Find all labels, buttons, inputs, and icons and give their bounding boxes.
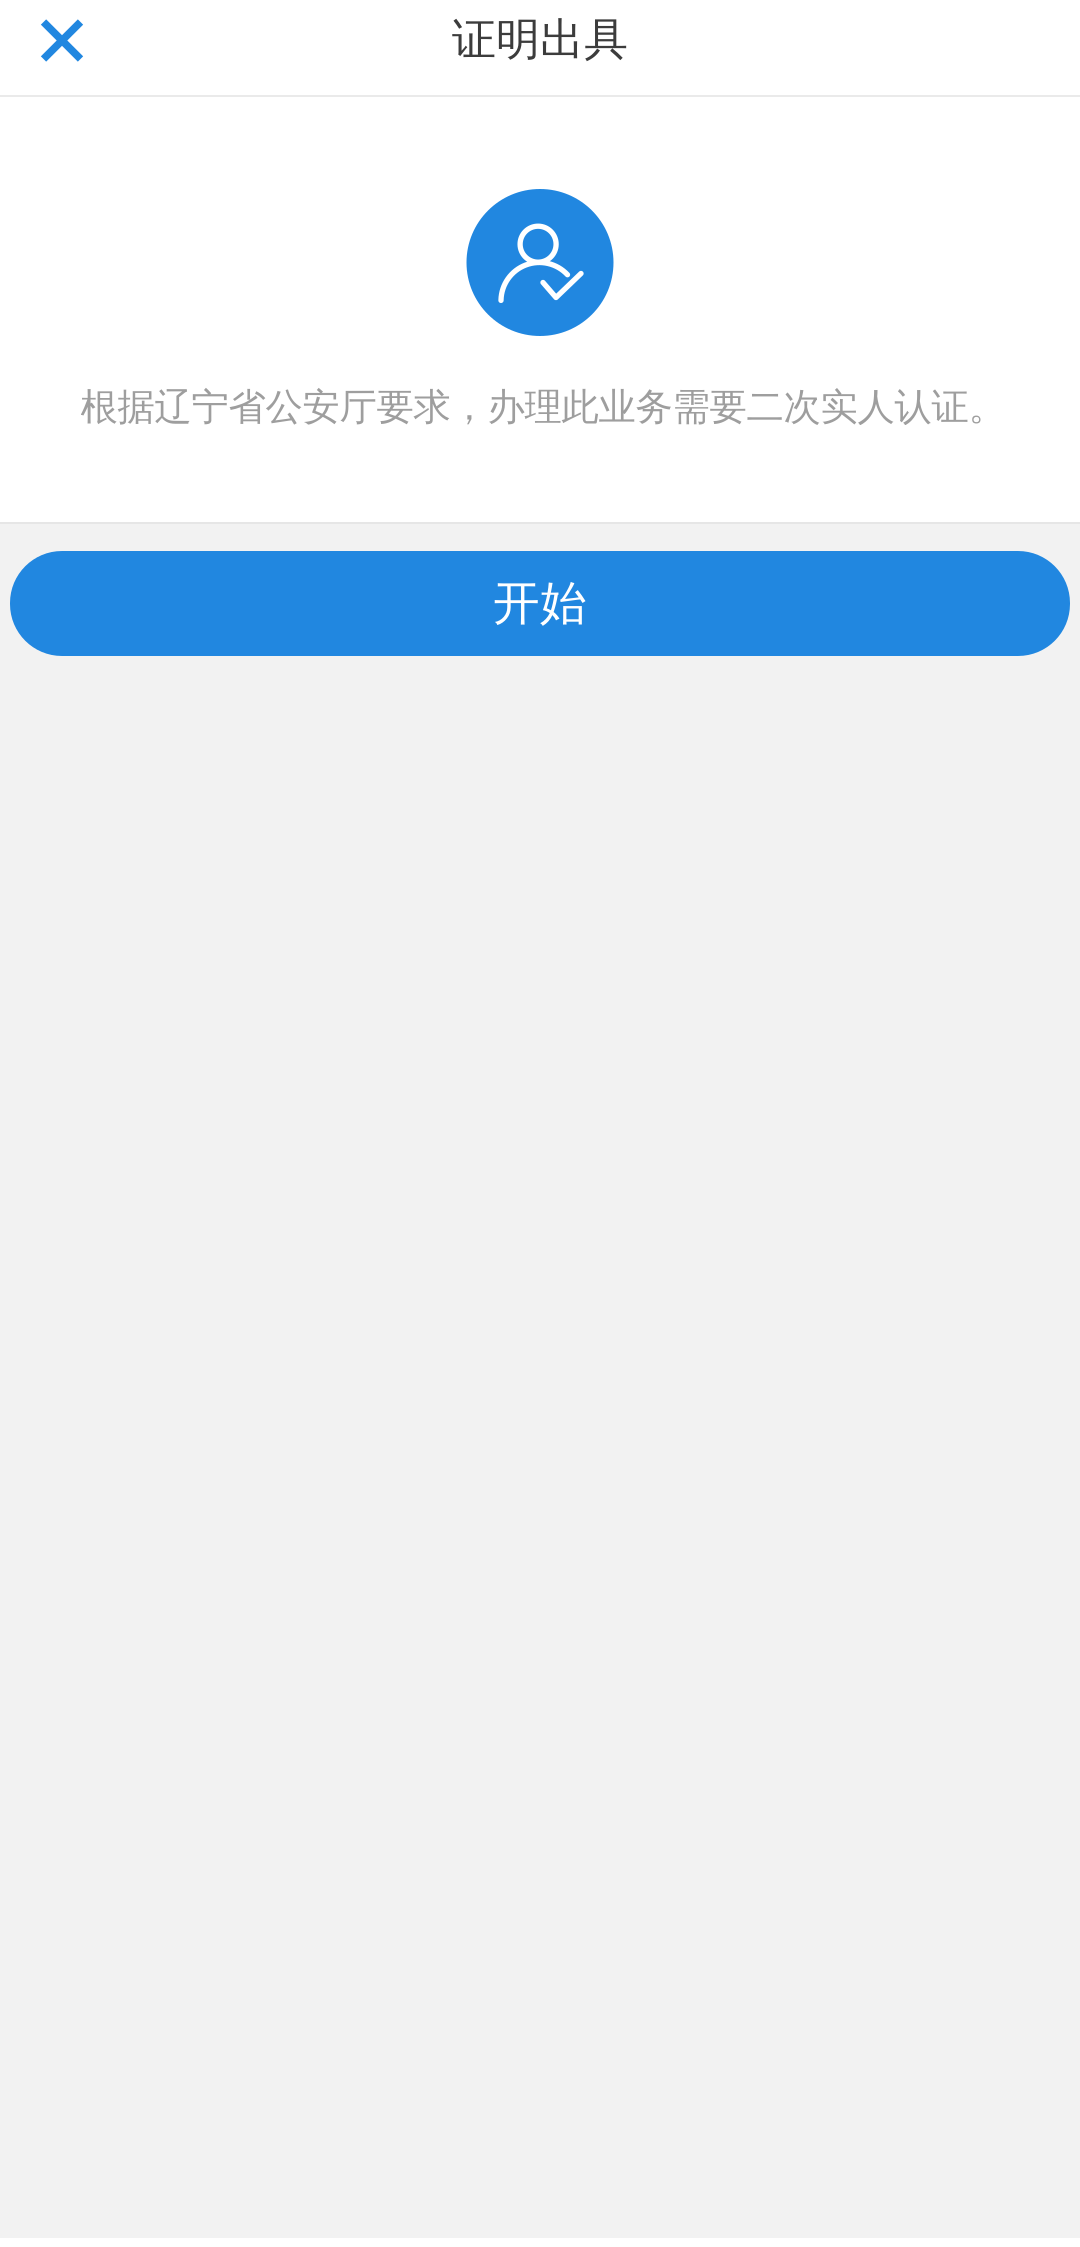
staticText: 证明出具 — [452, 12, 628, 66]
staticText: 根据辽宁省公安厅要求，办理此业务需要二次实人认证。 — [80, 384, 1005, 430]
staticText: 开始 — [493, 575, 587, 632]
button[interactable]: 开始 — [10, 551, 1070, 656]
button[interactable]: Close — [10, 0, 114, 88]
